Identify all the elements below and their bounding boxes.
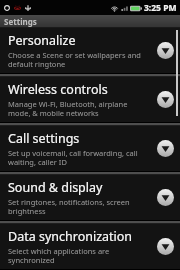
button[interactable]: Sound & display (0, 175, 180, 220)
staticText: Choose a Scene or set wallpapers and def… (8, 50, 144, 69)
button[interactable]: Expand Wireless controls (157, 91, 174, 108)
staticText: Personalize (8, 32, 76, 49)
button[interactable]: Expand Call settings (157, 140, 174, 157)
staticText: Call settings (8, 130, 80, 147)
staticText: Settings (4, 16, 37, 27)
staticText: Wireless controls (8, 81, 108, 98)
staticText: Data synchronization (8, 228, 133, 245)
button[interactable]: Wireless controls (0, 77, 180, 122)
button[interactable]: Expand Personalize (157, 42, 174, 59)
staticText: Sound & display (8, 179, 103, 196)
button[interactable]: Expand Data synchronization (157, 238, 174, 255)
staticText: 3:25 PM (144, 2, 177, 14)
button[interactable]: Call settings (0, 126, 180, 171)
staticText: Set ringtones, notifications, screen bri… (8, 197, 144, 216)
button[interactable]: Personalize (0, 28, 180, 73)
staticText: Set up voicemail, call forwarding, call … (8, 148, 144, 167)
staticText: Manage Wi-Fi, Bluetooth, airplane mode, … (8, 99, 144, 118)
button[interactable]: Data synchronization (0, 224, 180, 269)
button[interactable]: Expand Sound & display (157, 189, 174, 206)
staticText: Select which applications are synchroniz… (8, 246, 144, 265)
